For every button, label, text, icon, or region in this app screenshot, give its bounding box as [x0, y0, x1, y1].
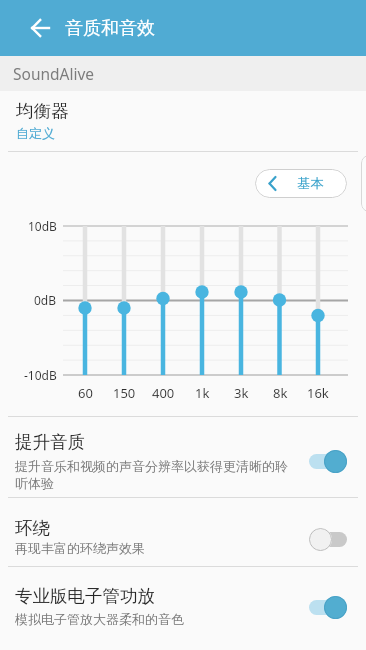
staticText: -10dB — [24, 367, 57, 383]
button[interactable] — [303, 521, 353, 558]
staticText: 16k — [307, 384, 329, 401]
button[interactable] — [303, 443, 353, 480]
staticText: 8k — [273, 384, 288, 401]
staticText: 模拟电子管放大器柔和的音色 — [15, 611, 184, 627]
button[interactable]: 提升音质 — [0, 417, 366, 497]
staticText: 环绕 — [15, 517, 50, 539]
button[interactable] — [303, 589, 353, 626]
button[interactable]: 环绕 — [0, 497, 366, 566]
staticText: 自定义 — [16, 125, 55, 141]
button[interactable]: 专业版电子管功放 — [0, 566, 366, 650]
button[interactable]: 基本 — [255, 169, 347, 198]
staticText: 0dB — [34, 292, 57, 308]
staticText: 音质和音效 — [65, 17, 155, 40]
staticText: 基本 — [297, 175, 324, 192]
staticText: 1k — [195, 384, 210, 401]
staticText: 提升音乐和视频的声音分辨率以获得更清晰的聆 听体验 — [15, 458, 288, 492]
staticText: 150 — [113, 384, 136, 401]
button[interactable]: 均衡器 — [0, 91, 366, 151]
staticText: 400 — [152, 384, 175, 401]
staticText: 均衡器 — [16, 100, 69, 122]
staticText: 10dB — [28, 218, 57, 234]
staticText: SoundAlive — [13, 63, 95, 84]
staticText: 提升音质 — [15, 431, 85, 453]
staticText: 再现丰富的环绕声效果 — [15, 540, 145, 556]
staticText: 专业版电子管功放 — [15, 585, 155, 607]
staticText: 60 — [78, 384, 93, 401]
staticText: 3k — [234, 384, 249, 401]
button[interactable] — [20, 8, 60, 48]
